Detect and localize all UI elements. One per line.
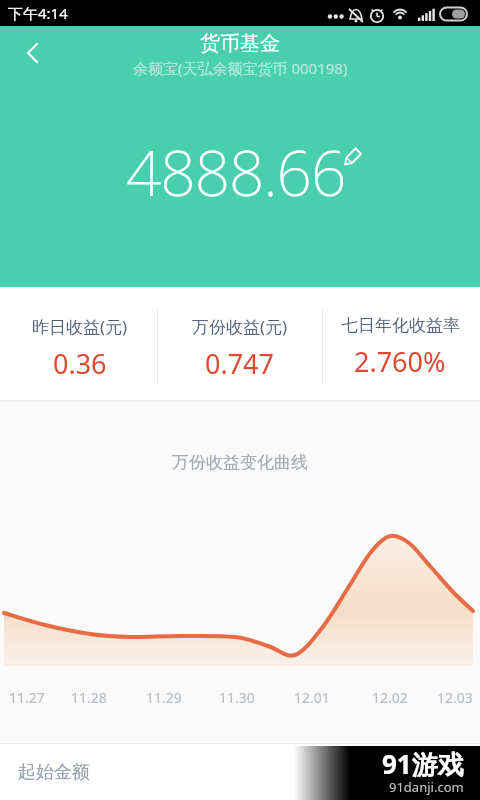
- staticText: 11.27: [9, 688, 45, 707]
- staticText: 货币基金: [200, 31, 280, 56]
- button[interactable]: 起始金额: [0, 744, 480, 800]
- staticText: 12.01: [294, 688, 330, 707]
- button[interactable]: [8, 34, 56, 70]
- button[interactable]: 4888.66: [0, 130, 480, 210]
- staticText: 12.03: [437, 688, 473, 707]
- staticText: 4888.66: [126, 130, 346, 210]
- staticText: 91danji.com: [389, 778, 464, 796]
- staticText: 12.02: [372, 688, 408, 707]
- staticText: 2.760%: [354, 343, 446, 380]
- staticText: 0.36: [53, 345, 107, 382]
- staticText: 七日年化收益率: [341, 315, 460, 336]
- staticText: 91游戏: [382, 746, 464, 782]
- staticText: 万份收益变化曲线: [172, 452, 308, 473]
- staticText: 0.747: [205, 345, 275, 382]
- staticText: 11.28: [71, 688, 107, 707]
- staticText: 下午4:14: [8, 3, 68, 23]
- staticText: 起始金额: [18, 761, 90, 784]
- staticText: 万份收益(元): [192, 315, 288, 338]
- staticText: 余额宝(天弘余额宝货币 000198): [133, 58, 348, 78]
- staticText: 11.30: [219, 688, 255, 707]
- staticText: 昨日收益(元): [32, 315, 128, 338]
- staticText: 11.29: [146, 688, 182, 707]
